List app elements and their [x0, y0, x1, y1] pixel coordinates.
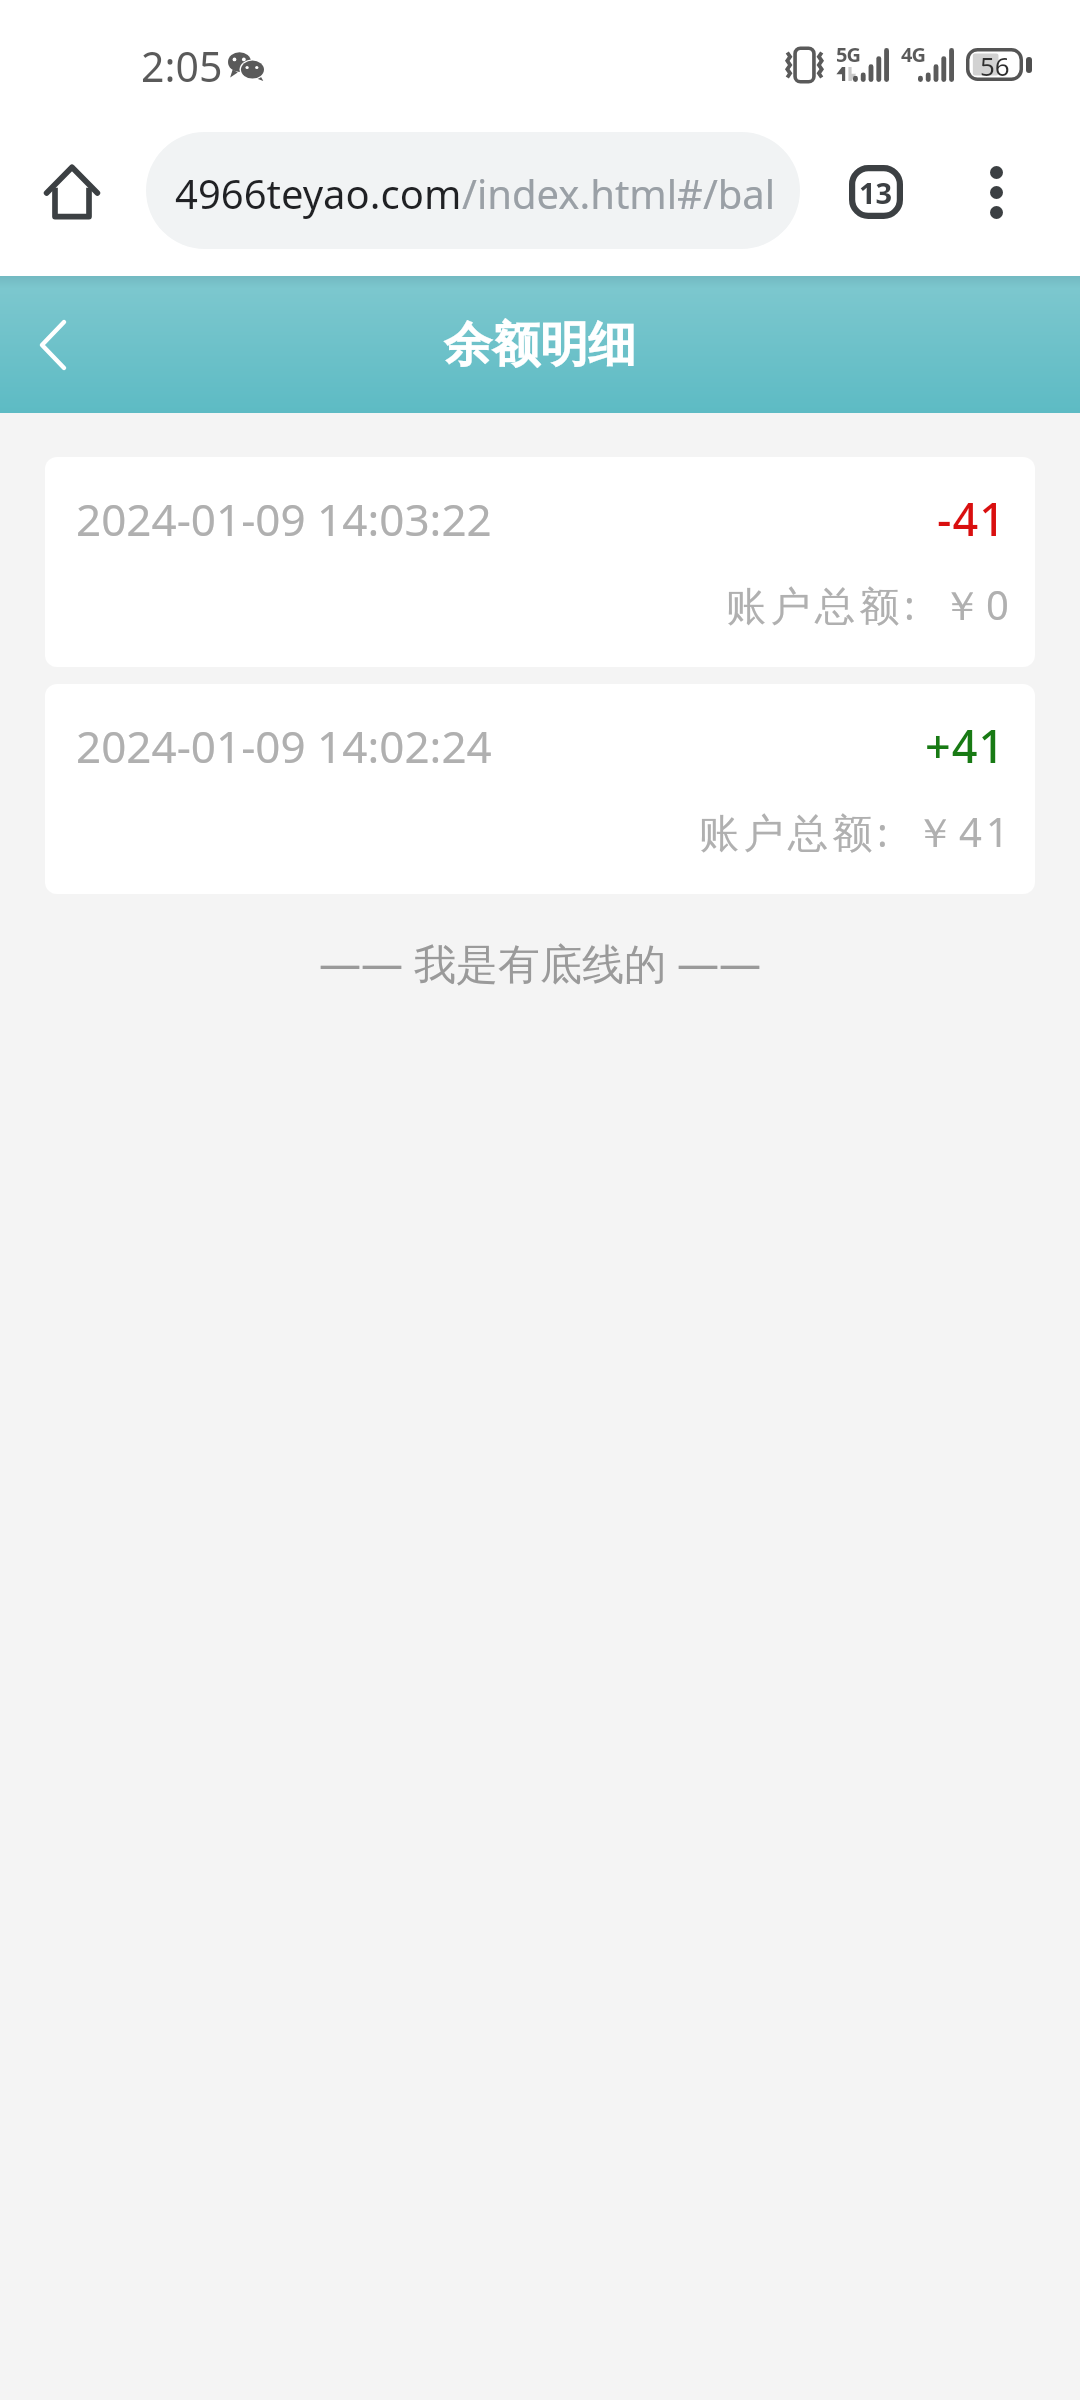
staticText: 13 [859, 173, 893, 212]
staticText: 账户总额: [699, 804, 893, 859]
button[interactable]: 4966teyao.com [146, 132, 800, 249]
staticText: 5G [836, 41, 860, 68]
button[interactable]: 2024-01-09 14:02:24 [45, 684, 1035, 894]
staticText: ￥41 [915, 804, 1013, 859]
button[interactable]: 2024-01-09 14:03:22 [45, 457, 1035, 667]
staticText: 2024-01-09 14:03:22 [76, 489, 492, 549]
staticText: —— 我是有底线的 —— [319, 934, 761, 991]
staticText: 账户总额: [726, 577, 920, 632]
staticText: 余额明细 [444, 315, 636, 375]
staticText: +41 [925, 715, 1006, 776]
button[interactable]: More options [941, 137, 1051, 247]
staticText: 4966teyao.com [175, 166, 462, 220]
staticText: -41 [937, 488, 1006, 549]
button[interactable]: Back [13, 305, 93, 385]
staticText: ￥0 [942, 577, 1013, 632]
staticText: 56 [980, 48, 1010, 81]
staticText: 2024-01-09 14:02:24 [76, 716, 492, 776]
button[interactable]: Home [17, 137, 126, 246]
button[interactable]: Tabs [821, 137, 931, 247]
staticText: /index.html#/bal [462, 166, 776, 220]
staticText: 2:05 [141, 38, 223, 94]
staticText: 4G [901, 41, 925, 68]
